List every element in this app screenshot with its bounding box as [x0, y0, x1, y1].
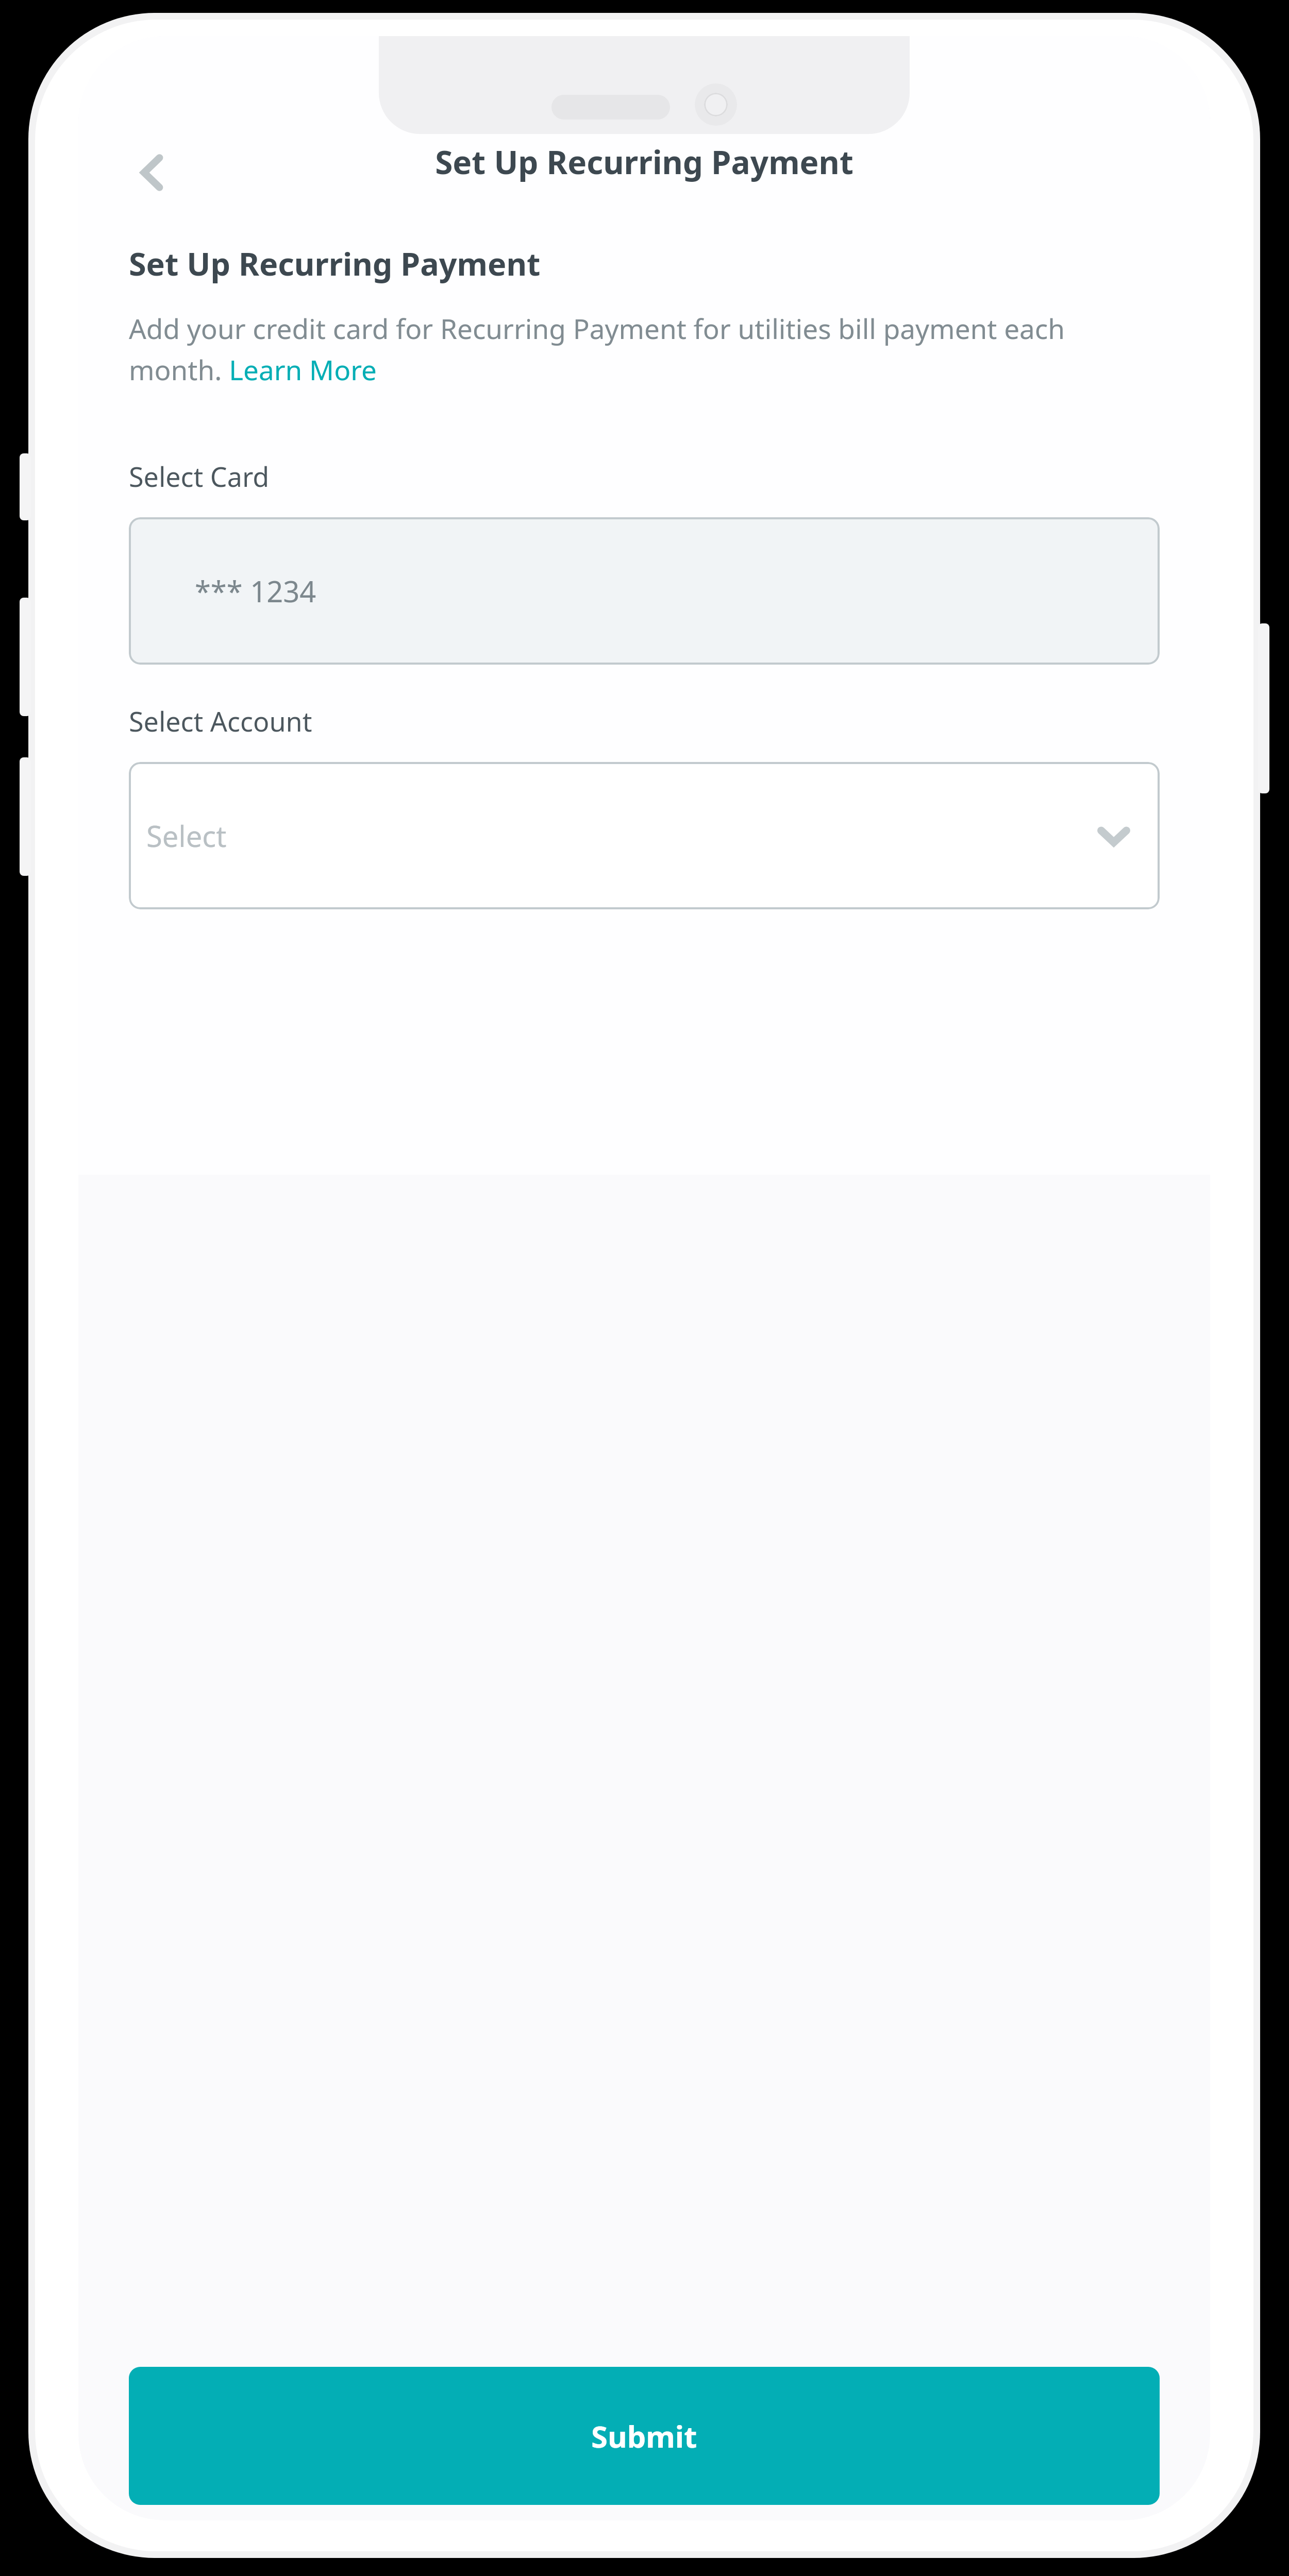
staticText: Select — [146, 816, 227, 855]
staticText: *** 1234 — [195, 571, 316, 611]
button[interactable]: Select — [129, 762, 1160, 909]
button[interactable]: *** 1234 — [129, 517, 1160, 665]
staticText: Set Up Recurring Payment — [78, 140, 1210, 183]
button[interactable]: Submit — [129, 2367, 1160, 2505]
staticText: Select Account — [129, 703, 312, 739]
button[interactable]: Back — [113, 134, 191, 211]
staticText: Set Up Recurring Payment — [129, 242, 541, 285]
staticText: Submit — [591, 2416, 697, 2456]
staticText: Add your credit card for Recurring Payme… — [129, 310, 1160, 388]
staticText: Select Card — [129, 458, 270, 495]
